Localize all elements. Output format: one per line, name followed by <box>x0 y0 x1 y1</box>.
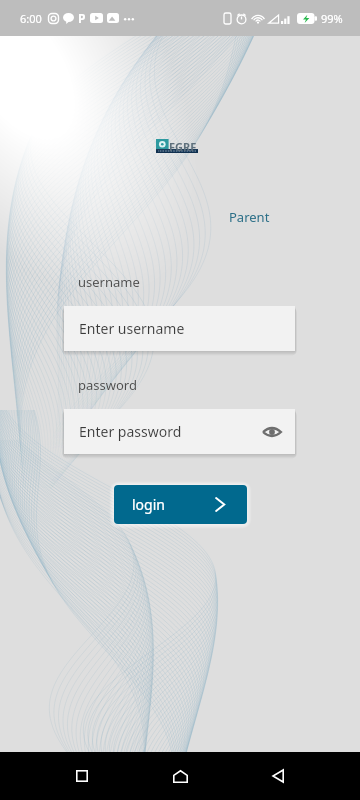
staticText: Parent <box>229 208 270 226</box>
staticText: login <box>132 495 165 514</box>
button[interactable]: Home <box>156 752 204 800</box>
staticText: 99% <box>321 11 343 26</box>
staticText: 6:00 <box>20 11 42 26</box>
staticText: Enter username <box>79 319 185 338</box>
button[interactable]: Recents <box>58 752 106 800</box>
staticText: P <box>78 10 86 26</box>
button[interactable]: login <box>114 485 247 524</box>
other: Show password <box>262 422 282 442</box>
staticText: username <box>78 273 140 291</box>
button[interactable]: Back <box>254 752 302 800</box>
button[interactable]: Enter username <box>64 306 295 351</box>
button[interactable]: Enter password <box>64 409 295 454</box>
staticText: password <box>78 376 137 394</box>
staticText: FGRF <box>169 139 197 153</box>
staticText: Enter password <box>79 422 182 441</box>
